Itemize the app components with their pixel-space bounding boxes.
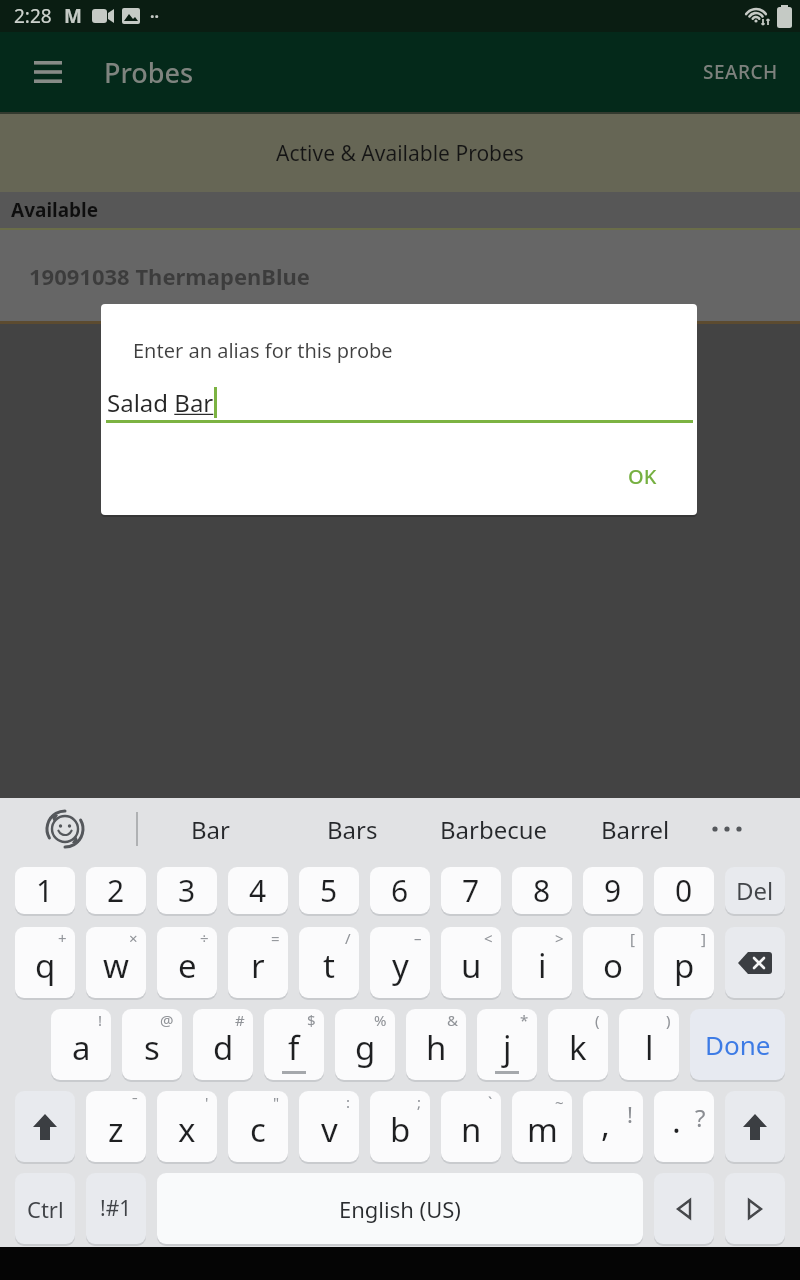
button[interactable]: n — [441, 1091, 501, 1162]
staticText: r — [251, 943, 265, 988]
button[interactable]: Barbecue — [424, 798, 564, 860]
staticText: ' — [205, 1092, 209, 1112]
button[interactable]: x — [157, 1091, 217, 1162]
button[interactable]: l — [619, 1009, 679, 1080]
staticText: 9 — [604, 870, 622, 911]
staticText: w — [103, 943, 129, 988]
staticText: [ — [630, 928, 635, 948]
button[interactable]: Bar — [140, 798, 280, 860]
button[interactable]: 19091038 ThermapenBlue — [0, 230, 800, 321]
staticText: , — [601, 1102, 610, 1147]
staticText: i — [538, 943, 547, 988]
button[interactable]: 6 — [370, 867, 430, 914]
button[interactable]: c — [228, 1091, 288, 1162]
staticText: Del — [736, 874, 774, 907]
staticText: × — [129, 928, 138, 948]
button[interactable] — [24, 48, 72, 96]
button[interactable]: t — [299, 927, 359, 998]
button[interactable]: 5 — [299, 867, 359, 914]
staticText: ˉ — [132, 1092, 138, 1112]
staticText: ` — [488, 1092, 493, 1112]
staticText: v — [321, 1107, 338, 1152]
staticText: Enter an alias for this probe — [133, 337, 393, 364]
staticText: ) — [666, 1010, 671, 1030]
staticText: Salad Bar — [107, 386, 214, 419]
button[interactable]: 1 — [15, 867, 75, 914]
button[interactable]: q — [15, 927, 75, 998]
staticText: Available — [11, 197, 99, 223]
button[interactable]: SEARCH — [697, 53, 784, 91]
button[interactable]: 9 — [583, 867, 643, 914]
button[interactable] — [15, 1091, 75, 1162]
staticText: Probes — [104, 54, 194, 91]
button[interactable]: Del — [725, 867, 785, 914]
staticText: 3 — [178, 870, 196, 911]
button[interactable]: h — [406, 1009, 466, 1080]
button[interactable]: w — [86, 927, 146, 998]
staticText: < — [484, 928, 493, 948]
button[interactable]: f — [264, 1009, 324, 1080]
staticText: 2 — [107, 870, 125, 911]
button[interactable]: j — [477, 1009, 537, 1080]
button[interactable]: o — [583, 927, 643, 998]
button[interactable] — [43, 807, 87, 851]
staticText: English (US) — [339, 1194, 461, 1224]
button[interactable]: i — [512, 927, 572, 998]
button[interactable]: 0 — [654, 867, 714, 914]
button[interactable]: 4 — [228, 867, 288, 914]
button[interactable] — [725, 1173, 785, 1244]
button[interactable]: Bars — [282, 798, 422, 860]
button[interactable]: 8 — [512, 867, 572, 914]
staticText: / — [345, 928, 351, 948]
button[interactable]: r — [228, 927, 288, 998]
staticText: ; — [417, 1092, 422, 1112]
staticText: + — [58, 928, 67, 948]
button[interactable]: Ctrl — [15, 1173, 75, 1244]
staticText: ] — [701, 928, 706, 948]
staticText: 19091038 ThermapenBlue — [29, 261, 310, 291]
button[interactable]: Done — [690, 1009, 785, 1080]
button[interactable]: e — [157, 927, 217, 998]
staticText: a — [72, 1025, 91, 1070]
button[interactable]: . — [654, 1091, 714, 1162]
staticText: Bar — [191, 813, 230, 846]
button[interactable]: s — [122, 1009, 182, 1080]
button[interactable]: d — [193, 1009, 253, 1080]
button[interactable]: p — [654, 927, 714, 998]
button[interactable]: b — [370, 1091, 430, 1162]
button[interactable]: 2 — [86, 867, 146, 914]
staticText: n — [461, 1107, 482, 1152]
button[interactable]: u — [441, 927, 501, 998]
staticText: 0 — [675, 870, 693, 911]
button[interactable] — [725, 1091, 785, 1162]
button[interactable]: OK — [622, 457, 663, 496]
button[interactable]: k — [548, 1009, 608, 1080]
staticText: 2:28 — [14, 3, 52, 29]
staticText: % — [374, 1010, 387, 1030]
button[interactable]: v — [299, 1091, 359, 1162]
button[interactable]: English (US) — [157, 1173, 643, 1244]
staticText: Barrel — [601, 813, 670, 846]
button[interactable]: m — [512, 1091, 572, 1162]
staticText: SEARCH — [703, 59, 778, 85]
button[interactable] — [725, 927, 785, 998]
button[interactable]: Barrel — [565, 798, 705, 860]
button[interactable]: !#1 — [86, 1173, 146, 1244]
staticText: !#1 — [100, 1194, 132, 1223]
button[interactable]: , — [583, 1091, 643, 1162]
button[interactable]: y — [370, 927, 430, 998]
staticText: Active & Available Probes — [276, 139, 524, 168]
button[interactable]: z — [86, 1091, 146, 1162]
button[interactable]: 3 — [157, 867, 217, 914]
staticText: Barbecue — [440, 813, 548, 846]
staticText: ·· — [150, 5, 159, 27]
button[interactable]: 7 — [441, 867, 501, 914]
button[interactable] — [654, 1173, 714, 1244]
staticText: ÷ — [200, 928, 209, 948]
staticText: # — [235, 1010, 245, 1030]
button[interactable]: a — [51, 1009, 111, 1080]
staticText: x — [178, 1107, 196, 1152]
staticText: M — [64, 3, 82, 29]
staticText: f — [288, 1025, 300, 1070]
button[interactable]: g — [335, 1009, 395, 1080]
